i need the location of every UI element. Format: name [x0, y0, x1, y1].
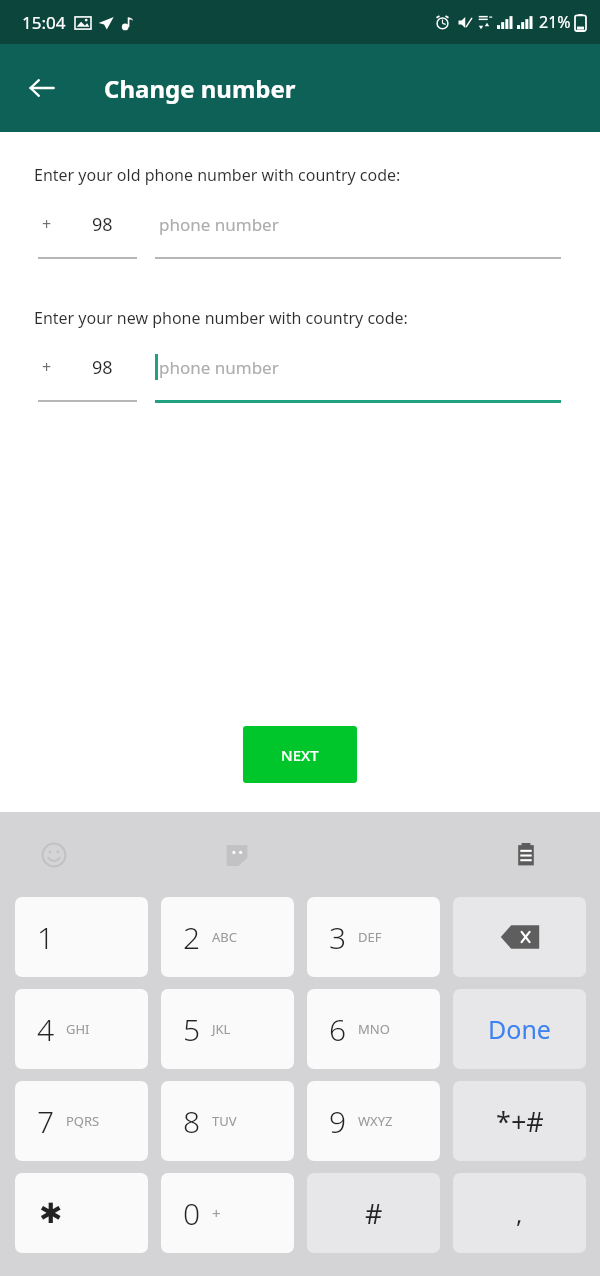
staticText: TUV [212, 1112, 237, 1130]
staticText: GHI [66, 1020, 90, 1038]
staticText: 5 [183, 1009, 201, 1050]
staticText: ABC [212, 928, 237, 946]
button[interactable]: ✱ [15, 1173, 148, 1253]
button[interactable]: + [38, 208, 137, 259]
staticText: Enter your old phone number with country… [34, 164, 401, 186]
staticText: phone number [159, 213, 279, 236]
staticText: 4 [37, 1009, 55, 1050]
button[interactable]: Back [16, 62, 68, 114]
button[interactable]: 7 [15, 1081, 148, 1161]
staticText: 7 [37, 1101, 55, 1142]
staticText: + [42, 356, 52, 378]
button[interactable]: + [38, 351, 137, 402]
button[interactable]: 0 [161, 1173, 294, 1253]
staticText: Change number [104, 72, 296, 105]
staticText: DEF [358, 928, 382, 946]
button[interactable]: 8 [161, 1081, 294, 1161]
button[interactable]: 1 [15, 897, 148, 977]
button[interactable]: 2 [161, 897, 294, 977]
button[interactable]: 4 [15, 989, 148, 1069]
staticText: 9 [329, 1101, 347, 1142]
staticText: , [516, 1197, 523, 1230]
staticText: MNO [358, 1020, 390, 1038]
staticText: 0 [183, 1193, 201, 1234]
button[interactable]: *+# [453, 1081, 586, 1161]
staticText: Enter your new phone number with country… [34, 307, 408, 329]
button[interactable]: # [307, 1173, 440, 1253]
button[interactable]: 5 [161, 989, 294, 1069]
staticText: 21% [539, 11, 571, 33]
button[interactable]: 3 [307, 897, 440, 977]
staticText: 98 [92, 355, 113, 380]
staticText: + [42, 213, 52, 235]
staticText: 2 [183, 917, 201, 958]
staticText: 1 [37, 917, 55, 958]
button[interactable]: 6 [307, 989, 440, 1069]
button[interactable]: Backspace [453, 897, 586, 977]
button[interactable]: Done [453, 989, 586, 1069]
staticText: JKL [212, 1020, 231, 1038]
button[interactable]: phone number [155, 208, 561, 259]
button[interactable]: Clipboard [504, 833, 548, 877]
staticText: *+# [496, 1103, 544, 1140]
staticText: # [365, 1195, 383, 1232]
button[interactable]: 9 [307, 1081, 440, 1161]
staticText: NEXT [281, 745, 319, 765]
staticText: PQRS [66, 1112, 100, 1130]
staticText: 98 [92, 212, 113, 237]
staticText: phone number [159, 356, 279, 379]
staticText: 8 [183, 1101, 201, 1142]
staticText: ✱ [39, 1197, 63, 1230]
staticText: WXYZ [358, 1112, 393, 1130]
staticText: 3 [329, 917, 347, 958]
button[interactable]: NEXT [243, 726, 357, 783]
staticText: 6 [329, 1009, 347, 1050]
staticText: 15:04 [22, 11, 66, 34]
staticText: Done [488, 1012, 551, 1046]
button[interactable]: , [453, 1173, 586, 1253]
button[interactable]: Emoji [32, 833, 76, 877]
staticText: + [212, 1203, 221, 1223]
button[interactable]: Stickers [215, 833, 259, 877]
button[interactable]: phone number [155, 351, 561, 403]
